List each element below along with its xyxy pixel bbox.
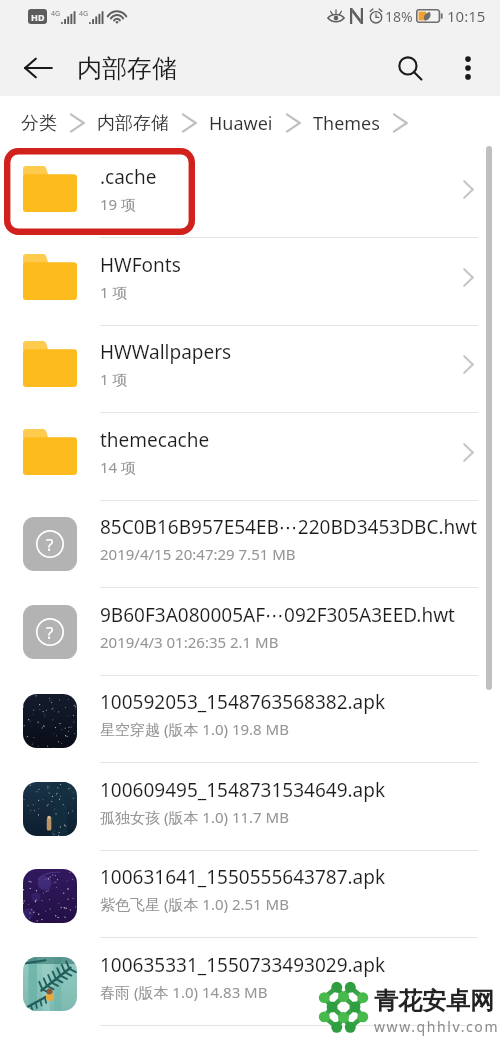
staticText: 内部存储 (77, 53, 177, 84)
button[interactable]: ? (0, 588, 500, 675)
staticText: 2019/4/15 20:47:29 7.51 MB (100, 544, 296, 564)
staticText: Themes (313, 111, 380, 136)
button[interactable]: 100609495_1548731534649.apk (0, 763, 500, 850)
staticText: 18% (385, 7, 413, 26)
staticText: 孤独女孩 (版本 1.0) 11.7 MB (100, 807, 289, 827)
button[interactable]: themecache (0, 413, 500, 500)
staticText: 100631641_1550555643787.apk (100, 864, 386, 890)
staticText: 内部存储 (97, 112, 169, 135)
button[interactable]: Themes (309, 111, 384, 136)
staticText: 85C0B16B957E54EB⋯220BD3453DBC.hwt (100, 514, 478, 540)
staticText: .cache (100, 164, 157, 190)
staticText: HWFonts (100, 252, 181, 278)
button[interactable]: More options (444, 44, 492, 92)
staticText: 4G (79, 9, 89, 19)
button[interactable]: Search (386, 44, 434, 92)
staticText: 10:15 (447, 6, 486, 26)
button[interactable]: HWFonts (0, 238, 500, 325)
staticText: 1 项 (100, 369, 128, 389)
button[interactable]: 100592053_1548763568382.apk (0, 675, 500, 762)
button[interactable]: .cache (0, 150, 500, 237)
staticText: ? (46, 621, 54, 644)
staticText: 19 项 (100, 194, 137, 214)
staticText: 100609495_1548731534649.apk (100, 777, 386, 803)
staticText: www.qhhlv.com (374, 1017, 500, 1036)
staticText: 青花安卓网 (374, 986, 494, 1016)
button[interactable]: Huawei (205, 111, 277, 136)
button[interactable]: HWWallpapers (0, 325, 500, 412)
staticText: ? (46, 533, 54, 556)
staticText: 春雨 (版本 1.0) 14.83 MB (100, 982, 268, 1002)
staticText: 1 项 (100, 282, 128, 302)
staticText: 分类 (21, 112, 57, 135)
staticText: Huawei (209, 111, 273, 136)
button[interactable]: 内部存储 (93, 112, 173, 135)
staticText: 9B60F3A080005AF⋯092F305A3EED.hwt (100, 602, 455, 628)
button[interactable]: 分类 (17, 112, 61, 135)
button[interactable]: 100631641_1550555643787.apk (0, 850, 500, 937)
button[interactable]: 100635331_1550733493029.apk (0, 938, 500, 1025)
button[interactable]: Back (14, 44, 62, 92)
staticText: 14 项 (100, 457, 137, 477)
staticText: 紫色飞星 (版本 1.0) 2.51 MB (100, 894, 289, 914)
staticText: 100635331_1550733493029.apk (100, 952, 386, 978)
staticText: 4G (51, 9, 61, 19)
staticText: themecache (100, 427, 210, 453)
staticText: HD (31, 11, 45, 23)
staticText: HWWallpapers (100, 339, 232, 365)
staticText: 2019/4/3 01:26:35 2.1 MB (100, 632, 279, 652)
staticText: 100592053_1548763568382.apk (100, 689, 386, 715)
staticText: 星空穿越 (版本 1.0) 19.8 MB (100, 719, 289, 739)
button[interactable]: ? (0, 500, 500, 587)
